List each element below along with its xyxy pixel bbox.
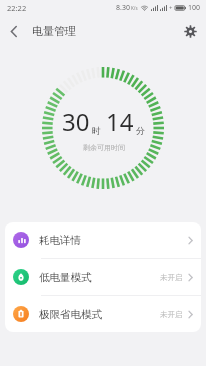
staticText: 14 — [106, 105, 134, 138]
button[interactable]: 耗电详情 — [5, 222, 201, 258]
staticText: 时 — [92, 125, 101, 136]
staticText: 分 — [136, 125, 145, 136]
staticText: 极限省电模式 — [39, 308, 102, 321]
staticText: 未开启 — [160, 273, 183, 282]
staticText: 剩余可用时间 — [83, 143, 125, 152]
staticText: 耗电详情 — [39, 234, 81, 247]
button[interactable]: Settings — [175, 19, 206, 44]
staticText: 低电量模式 — [39, 271, 92, 284]
staticText: + — [169, 4, 173, 12]
staticText: K/s — [131, 5, 138, 11]
staticText: 22:22 — [7, 3, 27, 13]
staticText: 未开启 — [160, 310, 183, 319]
staticText: 100 — [188, 3, 201, 13]
button[interactable]: Back — [0, 19, 28, 44]
staticText: 电量管理 — [32, 24, 76, 38]
staticText: 8.30 — [116, 3, 130, 13]
button[interactable]: 极限省电模式 — [5, 296, 201, 332]
button[interactable]: 低电量模式 — [5, 259, 201, 295]
staticText: 30 — [62, 105, 90, 138]
